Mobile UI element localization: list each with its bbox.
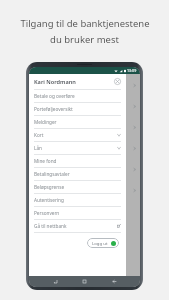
staticText: Personvern — [34, 210, 60, 216]
button[interactable]: Kort — [29, 129, 126, 141]
staticText: Autentisering — [34, 197, 64, 203]
button[interactable]: Betale og overføre — [29, 90, 126, 102]
staticText: Betale og overføre — [34, 93, 75, 99]
button[interactable]: Beløpsgrense — [29, 181, 126, 193]
staticText: Kort — [34, 132, 44, 138]
staticText: Logg ut — [92, 240, 108, 246]
button[interactable]: Recents — [52, 278, 59, 285]
staticText: du bruker mest — [50, 33, 119, 46]
button[interactable]: Meldinger — [29, 116, 126, 128]
staticText: Lån — [34, 145, 42, 151]
staticText: Kari Nordmann — [34, 78, 76, 86]
button[interactable]: Personvern — [29, 207, 126, 219]
button[interactable]: Gå til nettbank — [29, 220, 126, 232]
button[interactable]: Logg ut — [87, 238, 119, 248]
staticText: Porteføljeoversikt — [34, 106, 73, 112]
staticText: Tilgang til de banktjenestene — [20, 17, 150, 30]
button[interactable]: Lån — [29, 142, 126, 154]
staticText: Meldinger — [34, 119, 57, 125]
button[interactable]: Autentisering — [29, 194, 126, 206]
staticText: Betalingsavtaler — [34, 171, 70, 177]
staticText: Gå til nettbank — [34, 223, 67, 229]
button[interactable]: Porteføljeoversikt — [29, 103, 126, 115]
button[interactable]: Hjem — [81, 278, 88, 285]
staticText: 13:09 — [127, 68, 137, 73]
button[interactable]: Tilbake — [111, 278, 118, 285]
button[interactable]: Betalingsavtaler — [29, 168, 126, 180]
button[interactable]: Kari Nordmann — [29, 74, 126, 89]
staticText: Mine fond — [34, 158, 57, 164]
button[interactable]: Mine fond — [29, 155, 126, 167]
staticText: Beløpsgrense — [34, 184, 65, 190]
button[interactable]: Lukk — [114, 78, 121, 85]
